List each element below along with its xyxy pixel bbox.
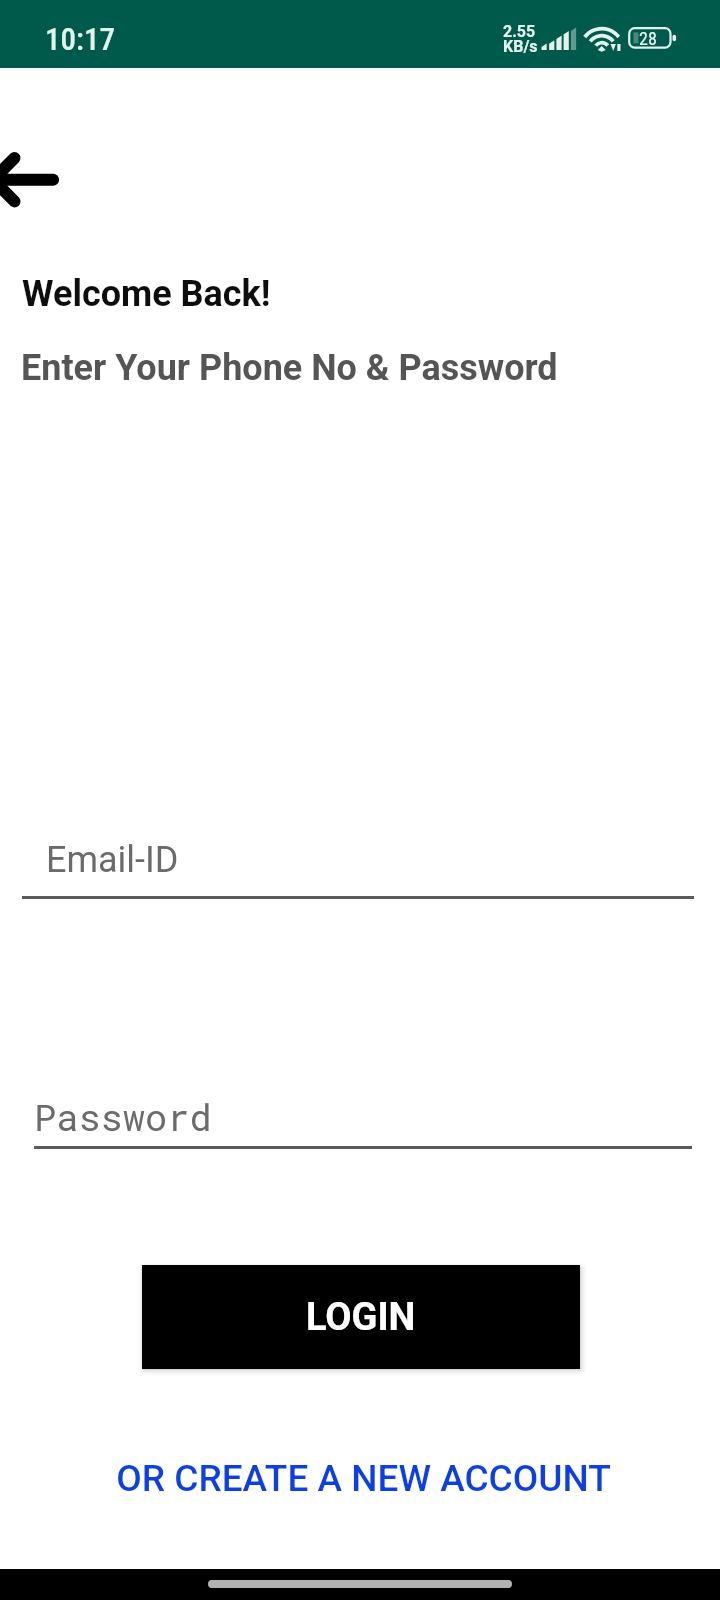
staticText: OR CREATE A NEW ACCOUNT: [116, 1457, 611, 1500]
staticText: KB/s: [503, 37, 538, 56]
button[interactable]: Password: [34, 1092, 692, 1149]
staticText: LOGIN: [306, 1295, 416, 1340]
staticText: Enter Your Phone No & Password: [21, 347, 558, 389]
staticText: 2.55: [503, 22, 536, 41]
button[interactable]: Back: [0, 132, 96, 228]
button[interactable]: Email-ID: [22, 828, 694, 899]
staticText: 10:17: [45, 21, 115, 57]
button[interactable]: LOGIN: [142, 1265, 580, 1369]
staticText: Password: [34, 1092, 212, 1141]
staticText: 28: [639, 28, 657, 49]
staticText: Email-ID: [46, 839, 179, 881]
staticText: Welcome Back!: [22, 273, 271, 315]
button[interactable]: OR CREATE A NEW ACCOUNT: [3, 1447, 720, 1509]
